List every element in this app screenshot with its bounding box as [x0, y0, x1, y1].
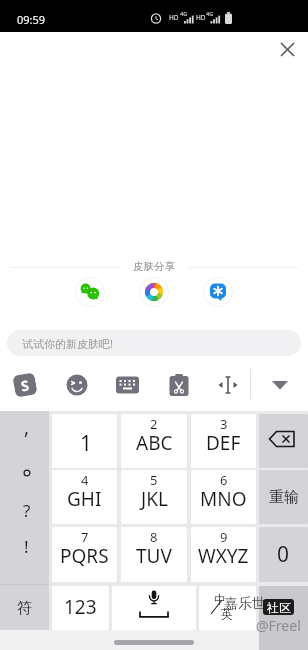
button[interactable]: 4 [52, 470, 117, 524]
staticText: ? [23, 499, 31, 522]
button[interactable]: 7 [52, 527, 117, 582]
button[interactable] [268, 376, 292, 394]
staticText: 123 [64, 594, 97, 620]
staticText: TUV [136, 543, 172, 569]
button[interactable]: 6 [191, 470, 256, 524]
staticText: 2 [150, 415, 158, 433]
staticText: HD [169, 13, 179, 22]
button[interactable]: ? [2, 498, 51, 522]
button[interactable]: 重输 [259, 470, 308, 524]
button[interactable]: 8 [121, 527, 187, 582]
staticText: PQRS [60, 543, 109, 569]
staticText: 中 [214, 592, 226, 607]
staticText: 0 [277, 540, 290, 569]
staticText: 4G [180, 10, 188, 17]
staticText: 7 [81, 528, 89, 546]
staticText: GHI [67, 486, 102, 512]
button[interactable] [259, 414, 308, 468]
button[interactable] [66, 374, 88, 396]
staticText: ! [24, 535, 29, 558]
staticText: 09:59 [17, 12, 46, 27]
staticText: 重输 [269, 488, 299, 507]
staticText: 试试你的新皮肤吧! [22, 336, 113, 351]
button[interactable]: 试试你的新皮肤吧! [7, 330, 301, 356]
button[interactable]: ! [2, 534, 51, 558]
button[interactable]: 5 [121, 470, 187, 524]
button[interactable] [259, 586, 308, 650]
button[interactable] [112, 586, 196, 630]
staticText: @Freel [256, 616, 301, 635]
button[interactable]: 符 [0, 586, 49, 630]
button[interactable]: 123 [52, 586, 109, 630]
button[interactable] [116, 376, 139, 394]
staticText: , [24, 414, 30, 438]
button[interactable]: 中 [199, 586, 256, 630]
staticText: 9 [220, 528, 228, 546]
button[interactable]: 3 [191, 414, 256, 468]
staticText: 皮肤分享 [0, 260, 308, 273]
staticText: 3 [220, 415, 228, 433]
staticText: 社区 [267, 600, 291, 615]
staticText: HD [196, 13, 206, 22]
button[interactable]: 2 [121, 414, 187, 468]
button[interactable]: 9 [191, 527, 256, 582]
staticText: 4G [206, 10, 214, 17]
button[interactable] [216, 374, 240, 396]
button[interactable]: S [12, 372, 38, 398]
staticText: WXYZ [198, 543, 249, 569]
button[interactable] [75, 277, 105, 307]
button[interactable]: 1 [52, 414, 117, 468]
staticText: 符 [17, 599, 32, 618]
button[interactable]: , [2, 414, 51, 438]
button[interactable] [203, 277, 233, 307]
button[interactable] [139, 277, 169, 307]
staticText: 1 [80, 429, 93, 458]
staticText: 4 [81, 471, 89, 489]
staticText: 8 [150, 528, 158, 546]
staticText: 5 [150, 471, 158, 489]
staticText: JKL [141, 486, 168, 512]
staticText: 6 [220, 471, 228, 489]
staticText: DEF [206, 430, 241, 456]
staticText: MNO [200, 486, 247, 512]
staticText: S [19, 375, 31, 395]
button[interactable]: 0 [259, 527, 308, 582]
staticText: 嘉乐世 [224, 595, 266, 613]
staticText: ABC [136, 430, 173, 456]
button[interactable] [274, 36, 302, 64]
button[interactable] [169, 374, 189, 396]
staticText: 英 [221, 606, 233, 621]
